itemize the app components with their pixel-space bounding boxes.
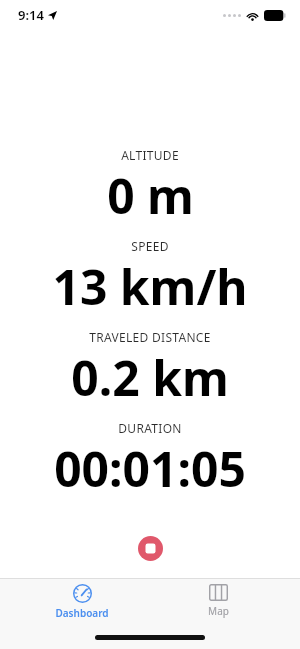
staticText: 9:14 [18, 6, 44, 24]
staticText: ALTITUDE [121, 147, 179, 163]
staticText: 13 km/h [52, 254, 248, 319]
staticText: Dashboard [55, 606, 109, 620]
staticText: 00:01:05 [54, 436, 246, 501]
staticText: 0 m [107, 163, 194, 228]
button[interactable]: Stop [133, 531, 167, 565]
staticText: SPEED [131, 238, 169, 254]
staticText: Map [208, 604, 229, 618]
staticText: DURATION [118, 420, 182, 436]
staticText: 0.2 km [71, 345, 229, 410]
button[interactable]: Dashboard [27, 579, 137, 620]
button[interactable]: Map [163, 579, 273, 618]
staticText: TRAVELED DISTANCE [89, 329, 211, 345]
